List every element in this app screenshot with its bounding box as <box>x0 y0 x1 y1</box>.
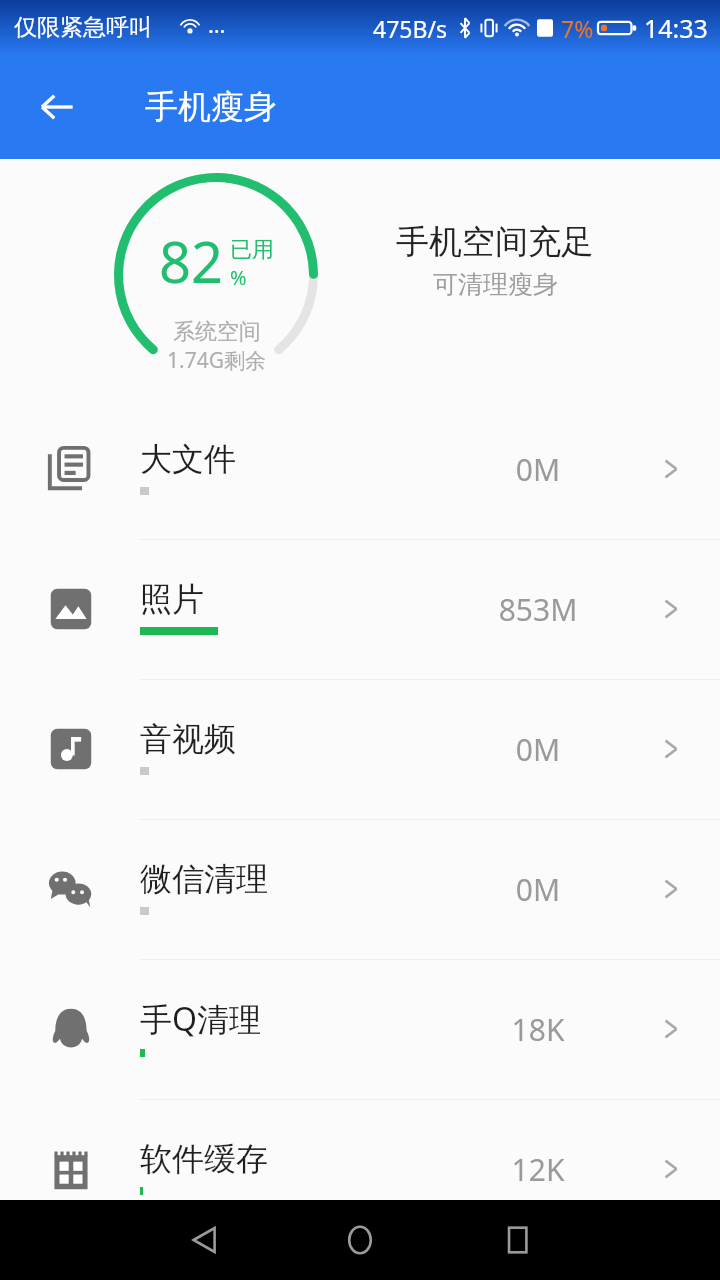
staticText: 18K <box>470 1009 606 1050</box>
button[interactable]: Back <box>172 1207 238 1273</box>
staticText: 软件缓存 <box>140 1139 268 1179</box>
button[interactable]: 照片 <box>0 539 720 679</box>
staticText: 系统空间 <box>173 318 261 346</box>
staticText: 12K <box>470 1149 606 1190</box>
staticText: 82 <box>159 223 224 299</box>
staticText: 照片 <box>140 579 204 619</box>
staticText: 仅限紧急呼叫 <box>14 13 152 42</box>
staticText: % <box>230 264 247 291</box>
staticText: 已用 <box>230 236 274 264</box>
button[interactable]: 大文件 <box>0 399 720 539</box>
staticText: 14:33 <box>644 11 708 45</box>
button[interactable]: 音视频 <box>0 679 720 819</box>
staticText: 7% <box>561 13 594 44</box>
staticText: 大文件 <box>140 439 236 479</box>
staticText: 475B/s <box>373 13 447 44</box>
staticText: 微信清理 <box>140 859 268 899</box>
button[interactable]: Home <box>327 1207 393 1273</box>
staticText: 可清理瘦身 <box>433 269 558 300</box>
staticText: 0M <box>470 869 606 910</box>
staticText: … <box>208 9 226 39</box>
staticText: 0M <box>470 729 606 770</box>
button[interactable]: Back <box>28 78 86 136</box>
staticText: 手机瘦身 <box>145 86 277 128</box>
button[interactable]: 软件缓存 <box>0 1099 720 1239</box>
button[interactable]: 微信清理 <box>0 819 720 959</box>
staticText: 音视频 <box>140 719 236 759</box>
staticText: 0M <box>470 449 606 490</box>
staticText: 手Q清理 <box>140 997 261 1041</box>
staticText: 1.74G剩余 <box>167 346 266 375</box>
staticText: 853M <box>470 589 606 630</box>
staticText: 手机空间充足 <box>396 221 594 263</box>
button[interactable]: Recents <box>485 1207 551 1273</box>
button[interactable]: 手Q清理 <box>0 959 720 1099</box>
